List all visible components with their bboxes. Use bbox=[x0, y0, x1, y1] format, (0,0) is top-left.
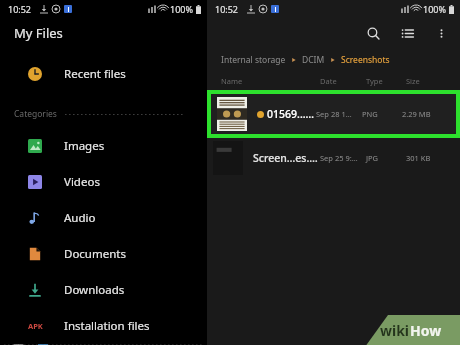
button[interactable]: DCIM bbox=[302, 54, 325, 66]
staticText: APK bbox=[28, 321, 43, 331]
staticText: 10:52 bbox=[8, 3, 32, 15]
button[interactable]: Screenshots bbox=[341, 54, 390, 66]
staticText: Sep 28 1… bbox=[316, 109, 362, 119]
staticText: Audio bbox=[64, 210, 96, 226]
button[interactable]: Search bbox=[362, 22, 384, 44]
button[interactable]: Documents bbox=[0, 236, 207, 272]
staticText: 2.29 MB bbox=[402, 109, 446, 119]
staticText: 100% bbox=[170, 3, 193, 15]
button[interactable]: More options bbox=[430, 22, 452, 44]
staticText: Type bbox=[366, 76, 406, 86]
staticText: 301 KB bbox=[406, 153, 450, 163]
staticText: Images bbox=[64, 138, 105, 154]
staticText: Installation files bbox=[64, 318, 150, 334]
staticText: Screen…es.jpg bbox=[253, 151, 320, 165]
staticText: Downloads bbox=[64, 282, 125, 298]
staticText: How bbox=[410, 321, 442, 340]
staticText: Documents bbox=[64, 246, 126, 262]
button[interactable]: View as list bbox=[396, 22, 418, 44]
button[interactable]: APK bbox=[0, 308, 207, 344]
staticText: Recent files bbox=[64, 66, 126, 82]
button[interactable]: Images bbox=[0, 128, 207, 164]
button[interactable]: Audio bbox=[0, 200, 207, 236]
staticText: Date bbox=[320, 76, 366, 86]
staticText: 100% bbox=[423, 3, 446, 15]
staticText: PNG bbox=[362, 109, 402, 119]
staticText: JPG bbox=[366, 153, 406, 163]
staticText: Videos bbox=[64, 174, 100, 190]
staticText: Categories bbox=[14, 108, 57, 120]
staticText: My Files bbox=[14, 24, 63, 42]
button[interactable]: Screen…es.jpg bbox=[207, 138, 460, 178]
button[interactable]: Recent files bbox=[0, 56, 207, 92]
staticText: 01569....png bbox=[267, 107, 316, 121]
staticText: 10:52 bbox=[215, 3, 239, 15]
staticText: Sep 25 9:… bbox=[320, 153, 366, 163]
button[interactable]: 01569....png bbox=[211, 94, 456, 134]
staticText: Name bbox=[221, 76, 320, 86]
staticText: Size bbox=[406, 76, 450, 86]
button[interactable]: Videos bbox=[0, 164, 207, 200]
staticText: wiki bbox=[380, 321, 410, 340]
button[interactable]: Downloads bbox=[0, 272, 207, 308]
button[interactable]: Internal storage bbox=[221, 54, 286, 66]
